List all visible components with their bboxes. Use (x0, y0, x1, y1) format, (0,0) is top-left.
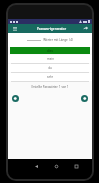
staticText: mein (47, 57, 54, 61)
button[interactable]: Previous password (11, 94, 20, 103)
button[interactable]: Wörter mit Länge (4) (8, 33, 92, 47)
button[interactable]: Recent apps (72, 162, 80, 170)
button[interactable]: Open navigation menu (11, 25, 18, 32)
staticText: Wörter mit Länge (4) (43, 38, 73, 42)
staticText: du (48, 66, 52, 70)
button[interactable]: mein (8, 55, 92, 63)
button[interactable]: Next password (80, 94, 89, 103)
staticText: Passwortgenerator (21, 27, 82, 31)
button[interactable]: Back (32, 162, 40, 170)
button[interactable]: du (8, 64, 92, 72)
button[interactable]: dies (10, 47, 90, 54)
staticText: Erstellte Passwörter: 1 von 1 (31, 85, 69, 89)
button[interactable]: Share (82, 25, 89, 32)
staticText: sehr (47, 75, 53, 79)
button[interactable]: Home (52, 162, 60, 170)
staticText: dies (47, 49, 53, 53)
button[interactable]: sehr (8, 73, 92, 81)
